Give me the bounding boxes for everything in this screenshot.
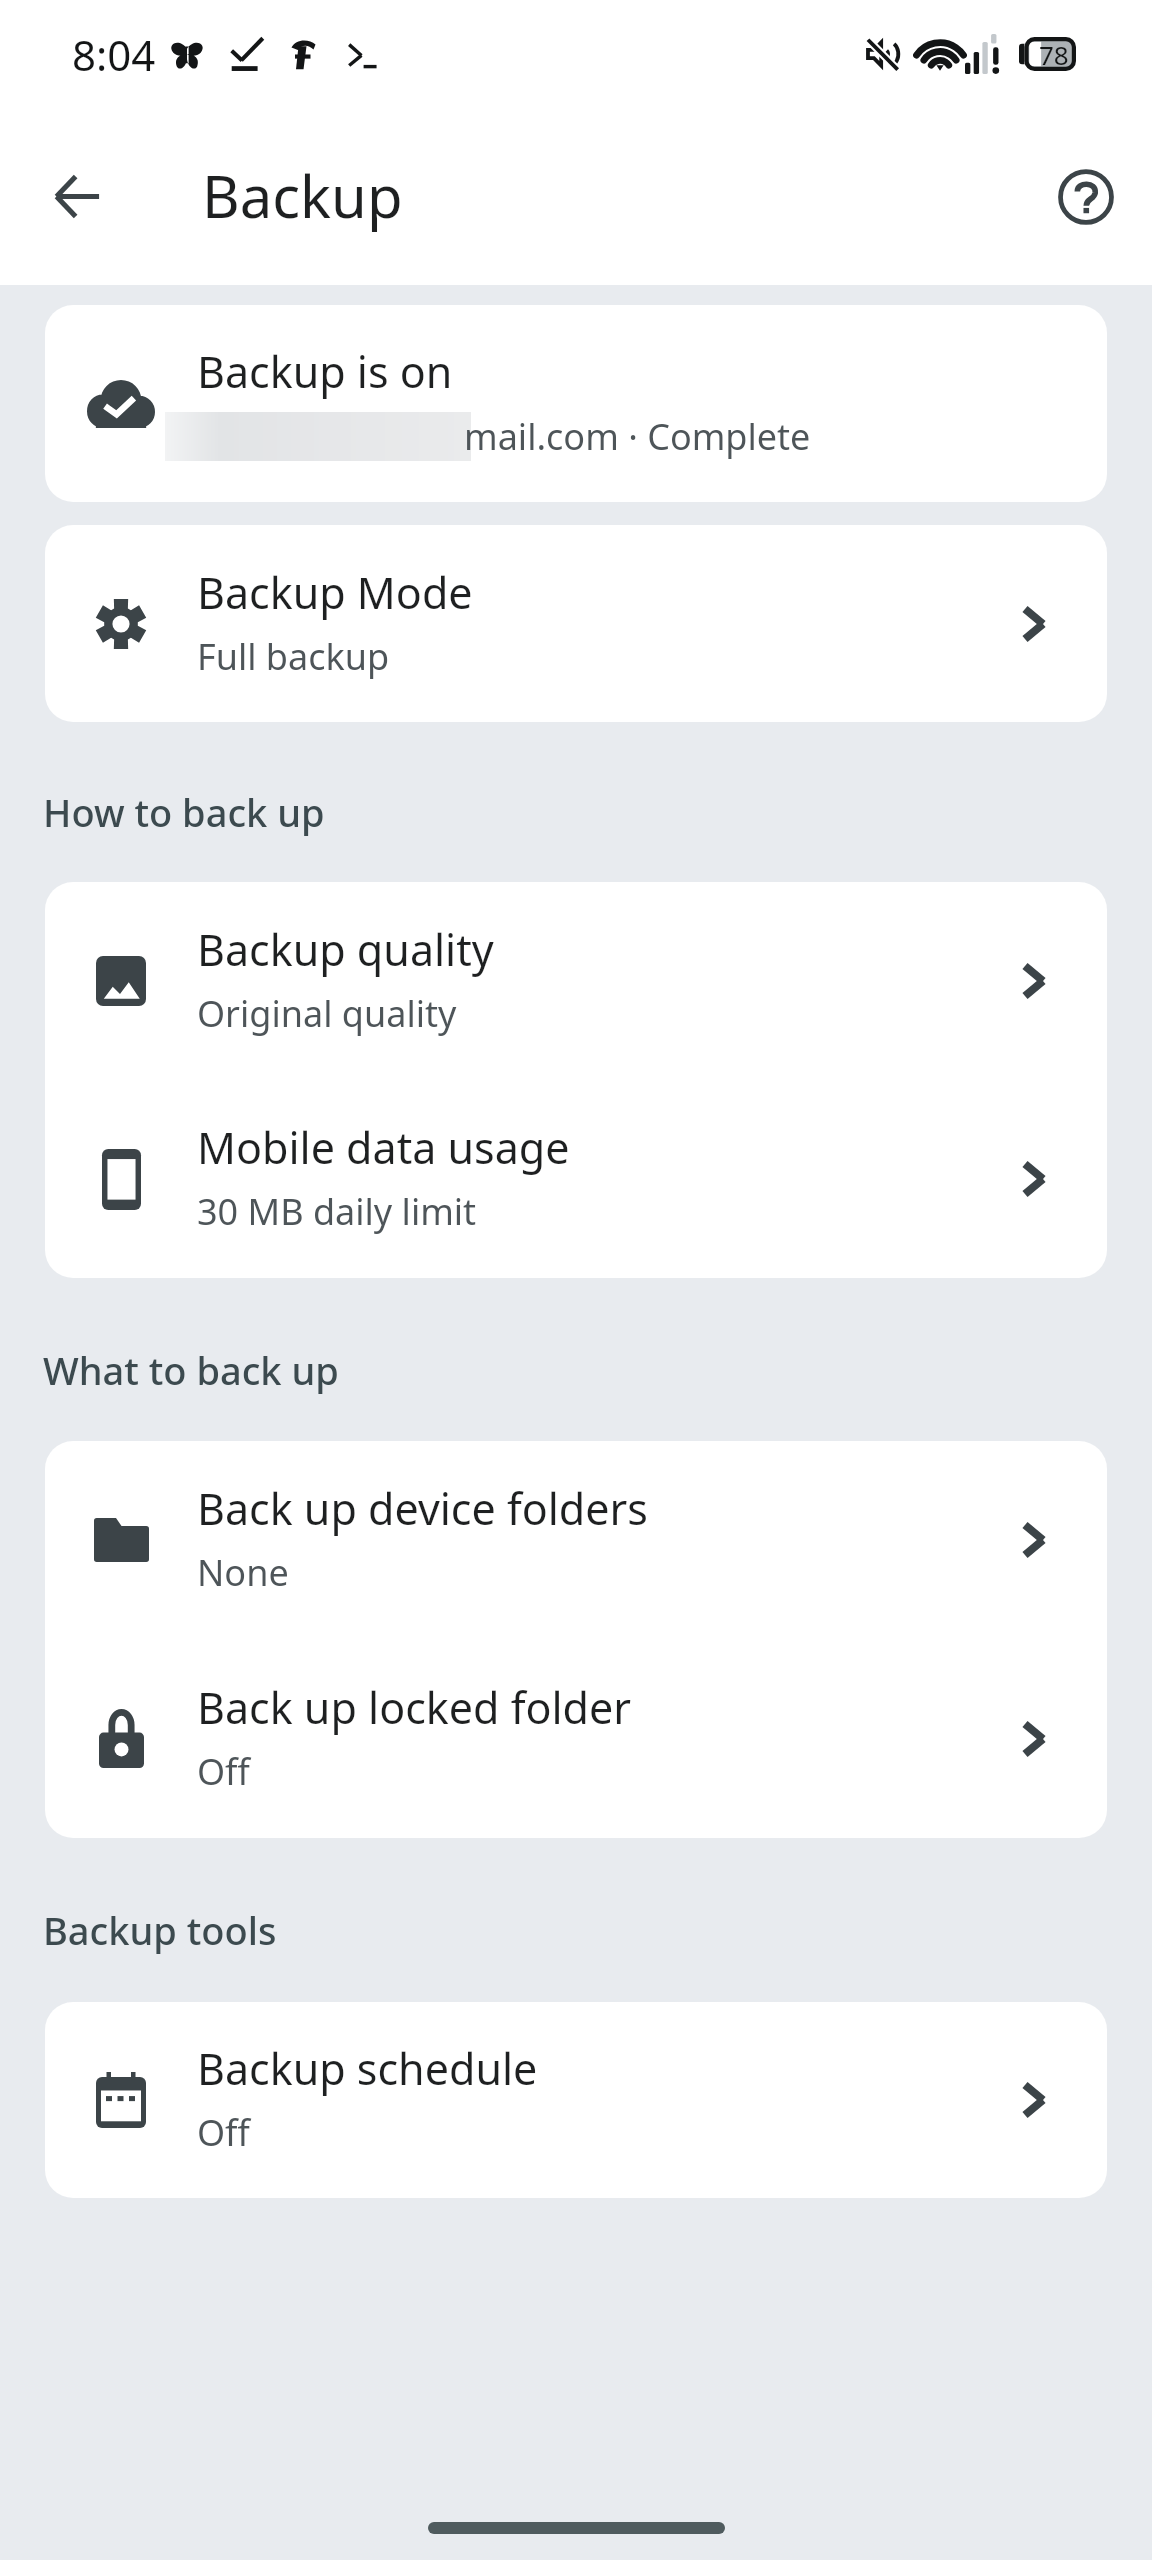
staticText: Original quality <box>197 989 457 1038</box>
button[interactable]: Backup quality <box>45 882 1107 1080</box>
button[interactable]: Backup Mode <box>45 525 1107 722</box>
staticText: None <box>197 1548 289 1597</box>
button[interactable]: Back up locked folder <box>45 1639 1107 1838</box>
button[interactable] <box>45 305 1107 502</box>
button[interactable]: Back <box>29 149 124 244</box>
staticText: 8:04 <box>72 26 156 83</box>
staticText: Backup quality <box>197 920 494 979</box>
button[interactable]: Mobile data usage <box>45 1080 1107 1278</box>
staticText: How to back up <box>43 786 325 838</box>
staticText: Off <box>197 2108 250 2157</box>
staticText: Backup Mode <box>197 563 473 622</box>
staticText: What to back up <box>43 1344 339 1396</box>
button[interactable]: Back up device folders <box>45 1441 1107 1639</box>
staticText: Backup <box>202 156 403 235</box>
staticText: mail.com · Complete <box>464 412 811 461</box>
staticText: Off <box>197 1747 250 1796</box>
button[interactable]: Help <box>1038 149 1133 244</box>
staticText: 78 <box>1039 37 1069 70</box>
button[interactable]: Backup schedule <box>45 2002 1107 2198</box>
staticText: Back up device folders <box>197 1479 648 1538</box>
staticText: Backup tools <box>43 1904 277 1956</box>
staticText: Full backup <box>197 632 390 681</box>
staticText: Backup is on <box>197 342 453 401</box>
staticText: Mobile data usage <box>197 1118 570 1177</box>
staticText: 30 MB daily limit <box>197 1187 477 1236</box>
staticText: Backup schedule <box>197 2039 538 2098</box>
staticText: Back up locked folder <box>197 1678 631 1737</box>
